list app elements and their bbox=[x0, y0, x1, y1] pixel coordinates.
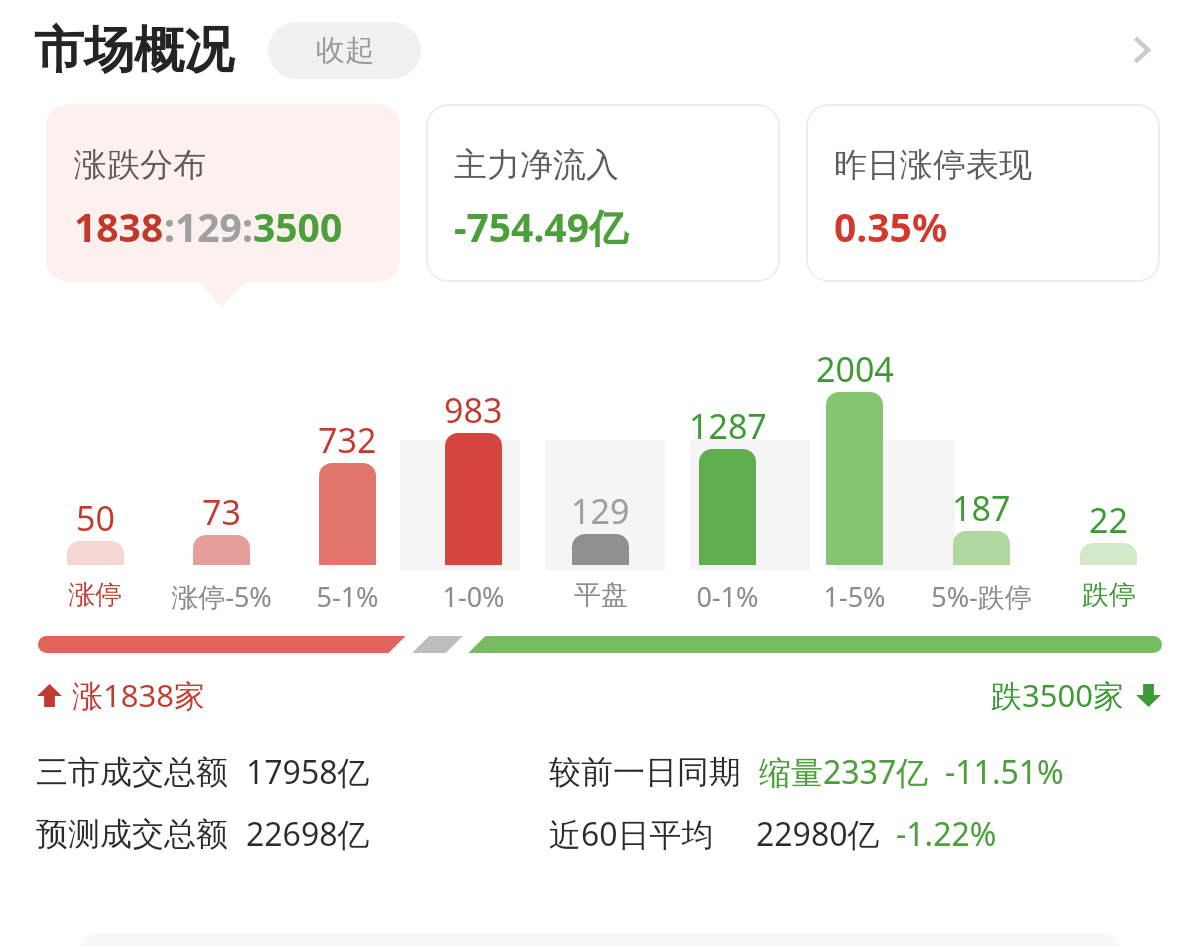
button[interactable]: 涨跌分布 bbox=[46, 104, 400, 282]
staticText: -11.51% bbox=[945, 750, 1064, 794]
staticText: 129 bbox=[175, 200, 242, 253]
staticText: 22698亿 bbox=[246, 812, 370, 856]
staticText: 22 bbox=[1089, 497, 1128, 543]
staticText: 主力净流入 bbox=[454, 144, 619, 186]
staticText: 73 bbox=[202, 489, 241, 535]
staticText: 1-5% bbox=[823, 578, 886, 615]
staticText: 5%-跌停 bbox=[931, 578, 1032, 615]
staticText: 平盘 bbox=[574, 578, 628, 612]
staticText: 收起 bbox=[316, 32, 374, 69]
button[interactable]: 收起 bbox=[268, 22, 421, 79]
button[interactable]: 昨日涨停表现 bbox=[806, 104, 1160, 282]
staticText: 缩量2337亿 bbox=[759, 750, 929, 794]
staticText: 22980亿 bbox=[756, 812, 880, 856]
staticText: 5-1% bbox=[316, 578, 379, 615]
staticText: 2004 bbox=[816, 346, 894, 392]
staticText: 50 bbox=[76, 495, 115, 541]
staticText: 732 bbox=[318, 417, 377, 463]
staticText: 市场概况 bbox=[34, 19, 234, 82]
staticText: -754.49亿 bbox=[454, 200, 628, 253]
staticText: 1838 bbox=[74, 200, 164, 253]
staticText: 涨跌分布 bbox=[74, 144, 206, 186]
staticText: 17958亿 bbox=[246, 750, 370, 794]
staticText: 3500 bbox=[253, 200, 343, 253]
staticText: 近60日平均 bbox=[549, 812, 714, 856]
staticText: : bbox=[164, 200, 175, 253]
staticText: 跌停 bbox=[1082, 578, 1136, 612]
staticText: 涨1838家 bbox=[72, 674, 205, 716]
staticText: 涨停 bbox=[68, 578, 122, 612]
staticText: : bbox=[242, 200, 253, 253]
staticText: 187 bbox=[952, 485, 1011, 531]
staticText: 涨停-5% bbox=[171, 578, 272, 615]
staticText: 983 bbox=[444, 387, 503, 433]
staticText: 129 bbox=[571, 488, 630, 534]
staticText: 1287 bbox=[689, 403, 767, 449]
staticText: -1.22% bbox=[896, 812, 997, 856]
staticText: 跌3500家 bbox=[991, 674, 1124, 716]
button[interactable]: Open market overview bbox=[1104, 13, 1178, 87]
staticText: 昨日涨停表现 bbox=[834, 144, 1032, 186]
button[interactable]: 主力净流入 bbox=[426, 104, 780, 282]
staticText: 0-1% bbox=[696, 578, 759, 615]
staticText: 预测成交总额 bbox=[36, 814, 228, 854]
staticText: 三市成交总额 bbox=[36, 752, 228, 792]
staticText: 较前一日同期 bbox=[549, 752, 741, 792]
staticText: 0.35% bbox=[834, 200, 948, 253]
staticText: 1-0% bbox=[442, 578, 505, 615]
